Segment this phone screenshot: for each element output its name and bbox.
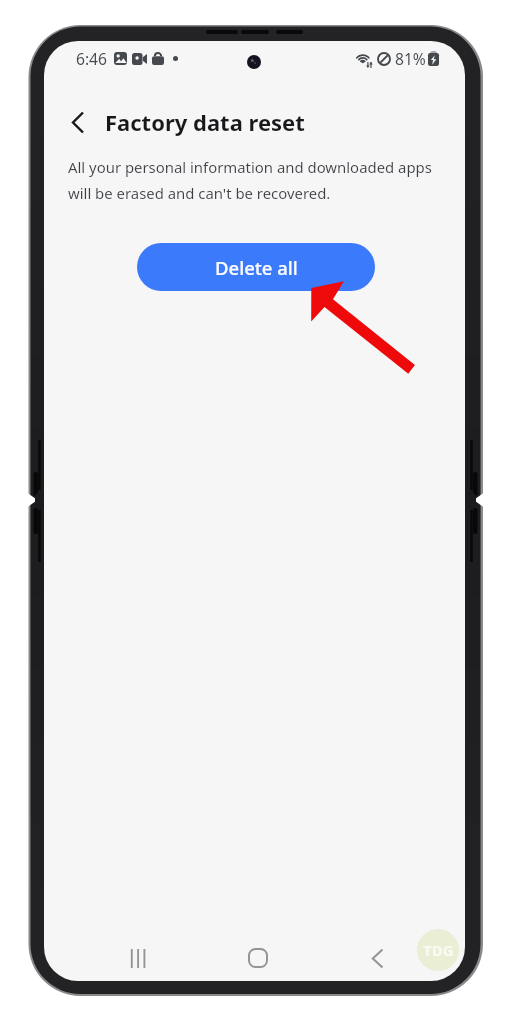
button[interactable]: Back bbox=[347, 934, 407, 981]
staticText: TDG bbox=[423, 940, 454, 960]
staticText: All your personal information and downlo… bbox=[68, 157, 432, 204]
staticText: Factory data reset bbox=[105, 107, 305, 137]
staticText: 6:46 bbox=[76, 48, 107, 69]
staticText: 81% bbox=[395, 48, 426, 69]
button[interactable]: Home bbox=[228, 934, 288, 981]
button[interactable]: Delete all bbox=[137, 243, 375, 291]
staticText: Delete all bbox=[215, 255, 298, 280]
button[interactable]: Back bbox=[61, 101, 95, 143]
button[interactable]: Recent apps bbox=[108, 934, 168, 981]
